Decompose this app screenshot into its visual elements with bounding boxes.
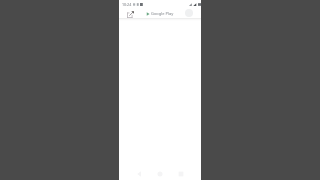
button[interactable]: Back [134,169,144,179]
button[interactable]: Recents [176,169,186,179]
button[interactable]: Account [185,9,193,17]
button[interactable]: Open [126,10,135,19]
staticText: 10:24 [122,2,132,7]
staticText: Google Play [151,11,174,16]
button[interactable]: Home [155,169,165,179]
